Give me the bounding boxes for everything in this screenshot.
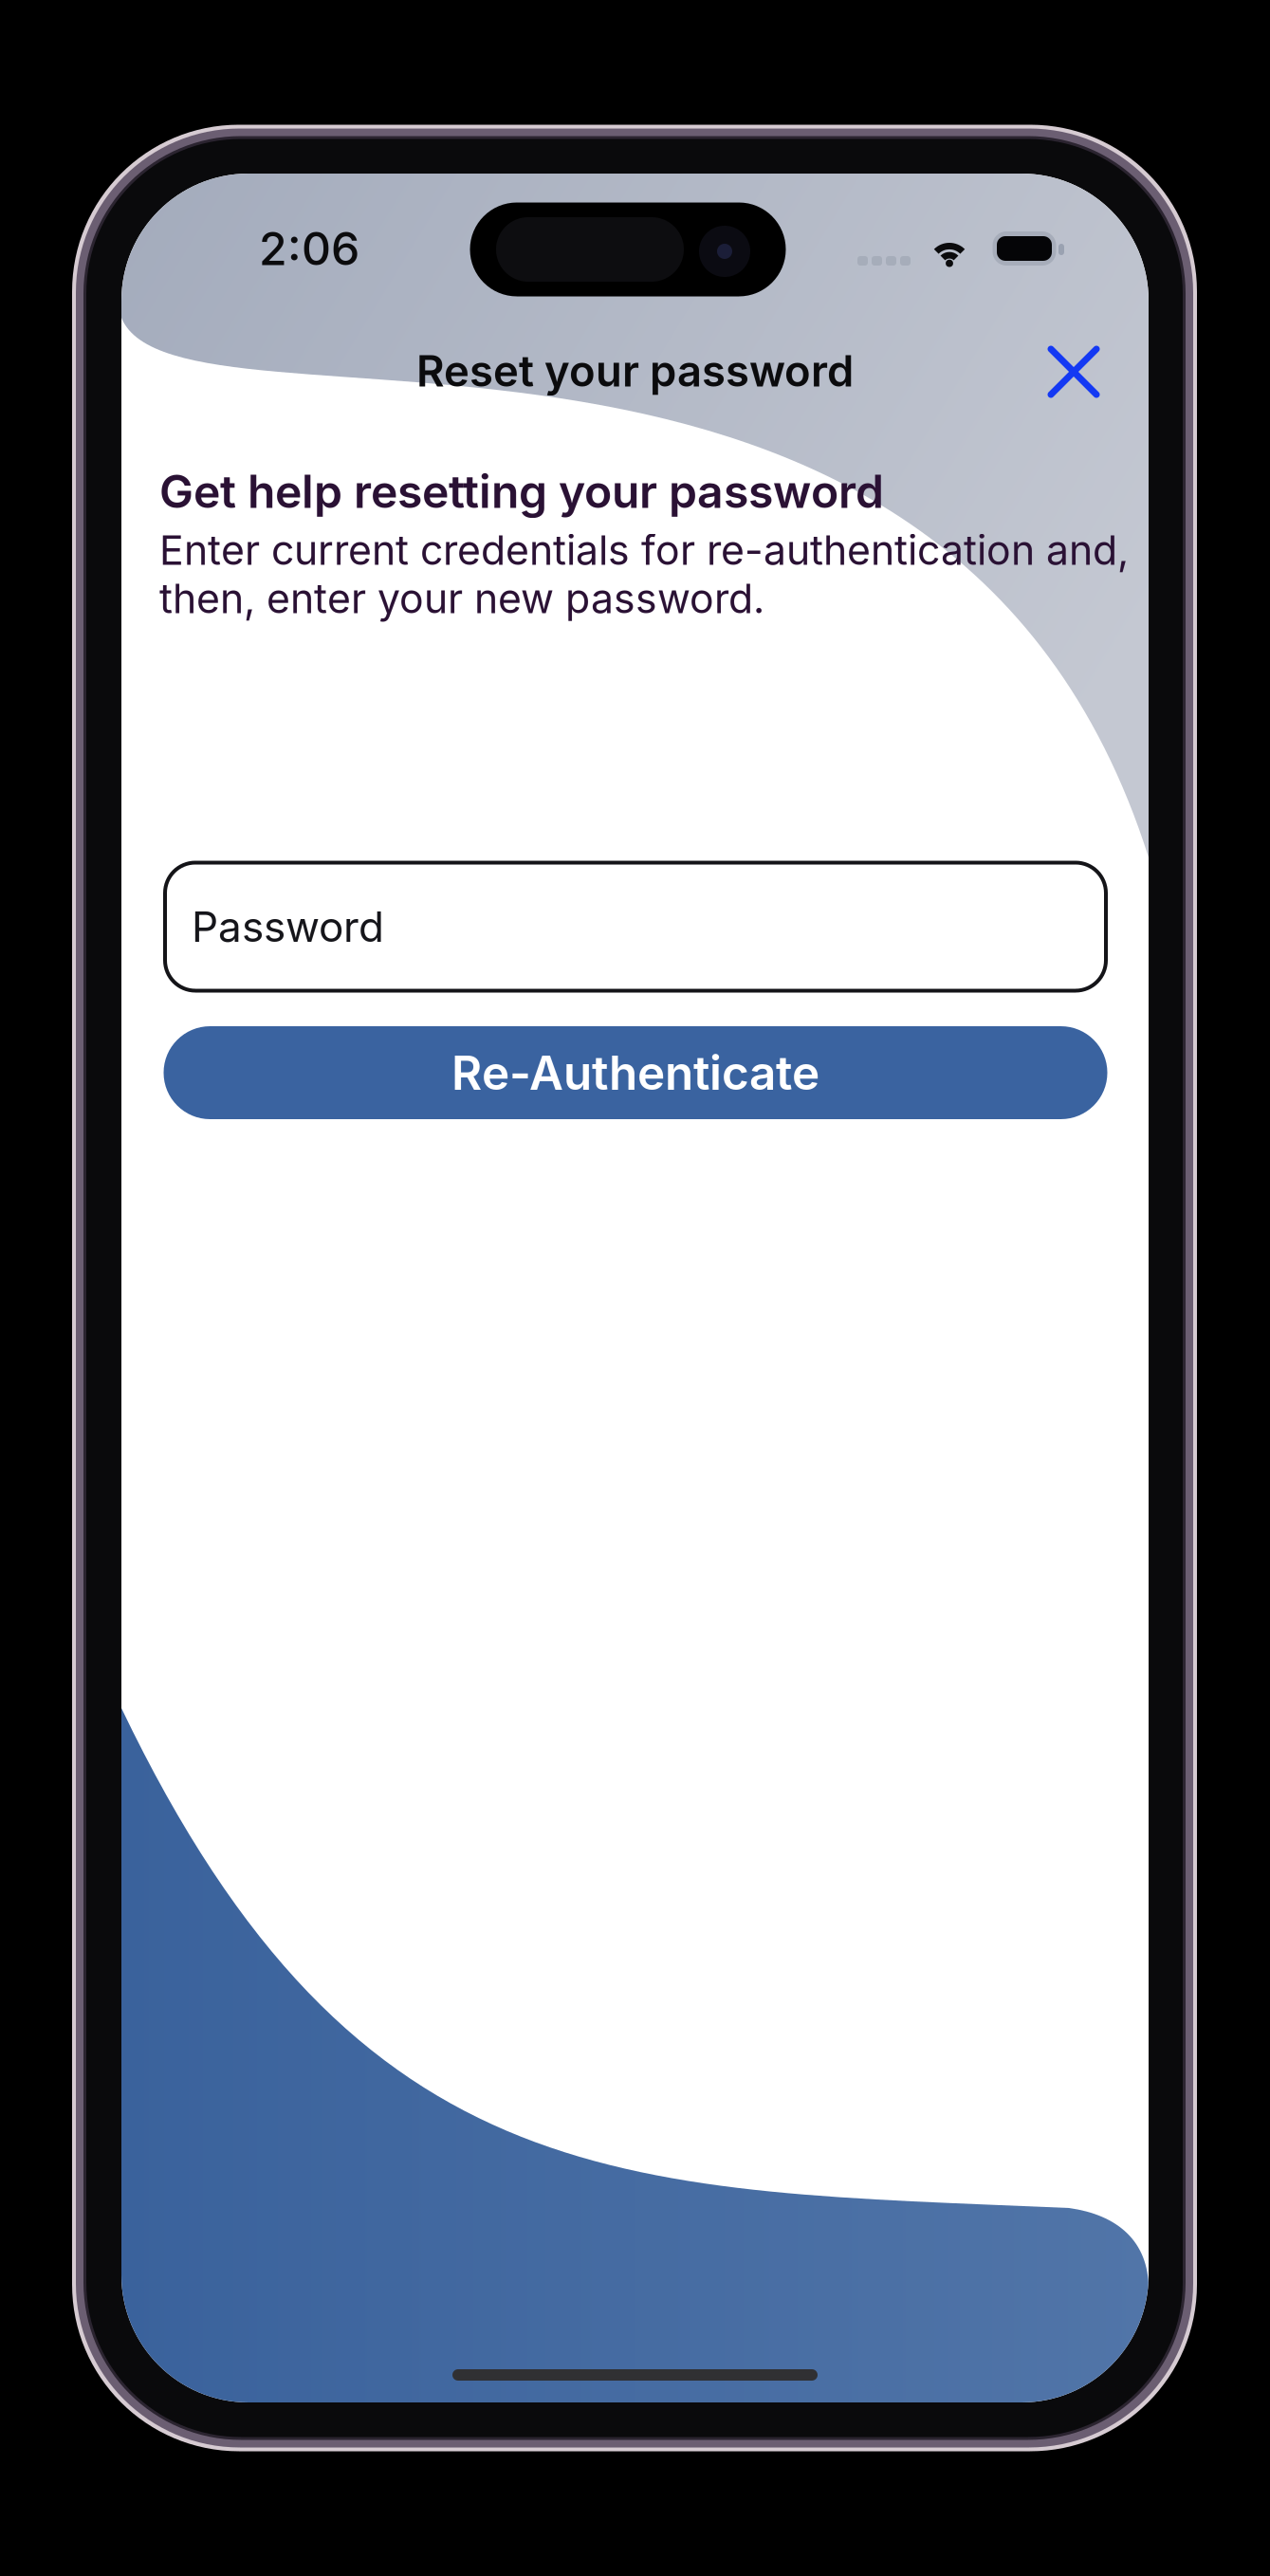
button[interactable]: Close (1028, 326, 1119, 417)
button[interactable]: Re-Authenticate (164, 1026, 1107, 1119)
button[interactable]: Password (165, 863, 1106, 991)
staticText: Reset your password (416, 345, 854, 397)
staticText: 2:06 (259, 221, 359, 276)
staticText: Get help resetting your password (159, 464, 884, 519)
staticText: Enter current credentials for re-authent… (159, 526, 1129, 575)
staticText: Re-Authenticate (451, 1044, 819, 1101)
staticText: Password (192, 901, 384, 952)
staticText: then, enter your new password. (159, 574, 764, 623)
